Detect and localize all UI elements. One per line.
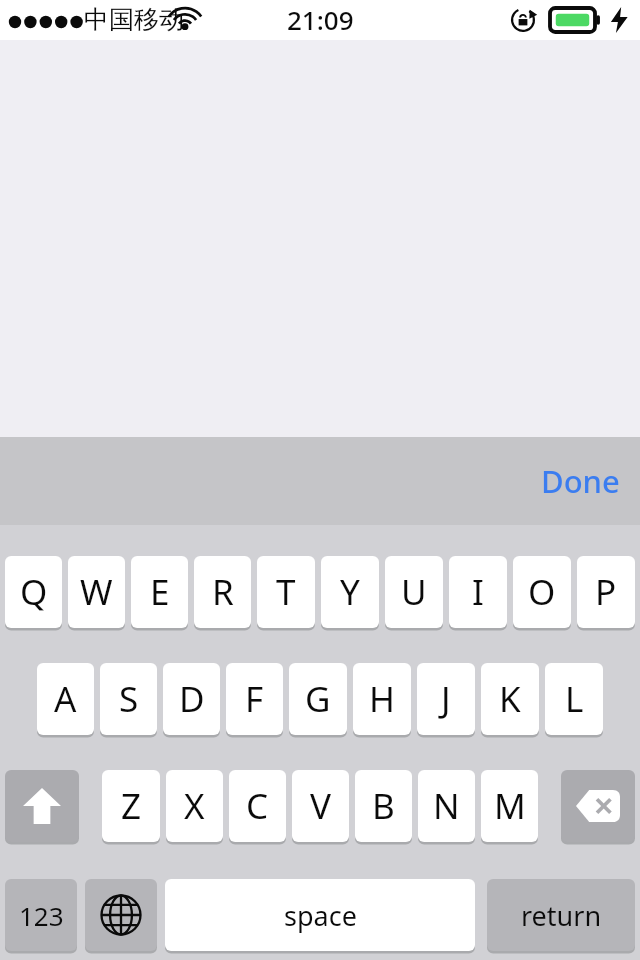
button[interactable]: Done bbox=[535, 454, 626, 508]
staticText: X bbox=[184, 782, 205, 830]
staticText: M bbox=[494, 782, 526, 830]
staticText: K bbox=[499, 675, 521, 723]
button[interactable]: F bbox=[226, 663, 283, 735]
staticText: A bbox=[54, 675, 77, 723]
staticText: I bbox=[472, 568, 484, 616]
staticText: U bbox=[401, 568, 427, 616]
button[interactable]: space bbox=[165, 879, 475, 951]
staticText: 中国移动 bbox=[84, 4, 184, 35]
staticText: E bbox=[150, 568, 170, 616]
staticText: Done bbox=[541, 460, 620, 502]
button[interactable]: U bbox=[385, 556, 443, 628]
button[interactable]: O bbox=[513, 556, 571, 628]
button[interactable]: I bbox=[449, 556, 507, 628]
staticText: P bbox=[595, 568, 617, 616]
button[interactable]: R bbox=[194, 556, 251, 628]
staticText: T bbox=[276, 568, 296, 616]
button[interactable]: B bbox=[355, 770, 412, 842]
staticText: B bbox=[372, 782, 395, 830]
button[interactable]: M bbox=[481, 770, 538, 842]
staticText: W bbox=[80, 568, 113, 616]
button[interactable]: Y bbox=[321, 556, 379, 628]
button[interactable]: P bbox=[577, 556, 635, 628]
staticText: S bbox=[119, 675, 139, 723]
button[interactable]: N bbox=[418, 770, 475, 842]
button[interactable]: Backspace bbox=[561, 770, 635, 842]
staticText: D bbox=[179, 675, 205, 723]
button[interactable]: return bbox=[487, 879, 635, 951]
button[interactable]: C bbox=[229, 770, 286, 842]
staticText: N bbox=[433, 782, 460, 830]
staticText: G bbox=[305, 675, 331, 723]
button[interactable]: S bbox=[100, 663, 157, 735]
button[interactable]: D bbox=[163, 663, 220, 735]
staticText: F bbox=[245, 675, 264, 723]
staticText: space bbox=[284, 897, 357, 934]
button[interactable]: E bbox=[131, 556, 188, 628]
button[interactable]: Z bbox=[102, 770, 160, 842]
button[interactable]: X bbox=[166, 770, 223, 842]
staticText: R bbox=[212, 568, 234, 616]
staticText: C bbox=[246, 782, 269, 830]
staticText: V bbox=[310, 782, 332, 830]
button[interactable]: Shift bbox=[5, 770, 79, 842]
staticText: J bbox=[441, 675, 451, 723]
button[interactable]: W bbox=[68, 556, 125, 628]
staticText: 123 bbox=[19, 898, 64, 933]
button[interactable]: A bbox=[37, 663, 94, 735]
button[interactable]: K bbox=[481, 663, 539, 735]
staticText: H bbox=[369, 675, 395, 723]
button[interactable]: H bbox=[353, 663, 411, 735]
staticText: return bbox=[521, 897, 602, 934]
button[interactable]: Q bbox=[5, 556, 62, 628]
staticText: 21:09 bbox=[287, 2, 354, 37]
button[interactable]: L bbox=[545, 663, 603, 735]
staticText: O bbox=[528, 568, 556, 616]
staticText: Y bbox=[340, 568, 360, 616]
button[interactable]: T bbox=[257, 556, 315, 628]
button[interactable]: 123 bbox=[5, 879, 77, 951]
staticText: Q bbox=[20, 568, 48, 616]
button[interactable]: G bbox=[289, 663, 347, 735]
button[interactable]: Next keyboard bbox=[85, 879, 157, 951]
staticText: L bbox=[565, 675, 584, 723]
staticText: Z bbox=[121, 782, 142, 830]
button[interactable]: V bbox=[292, 770, 349, 842]
button[interactable]: J bbox=[417, 663, 475, 735]
